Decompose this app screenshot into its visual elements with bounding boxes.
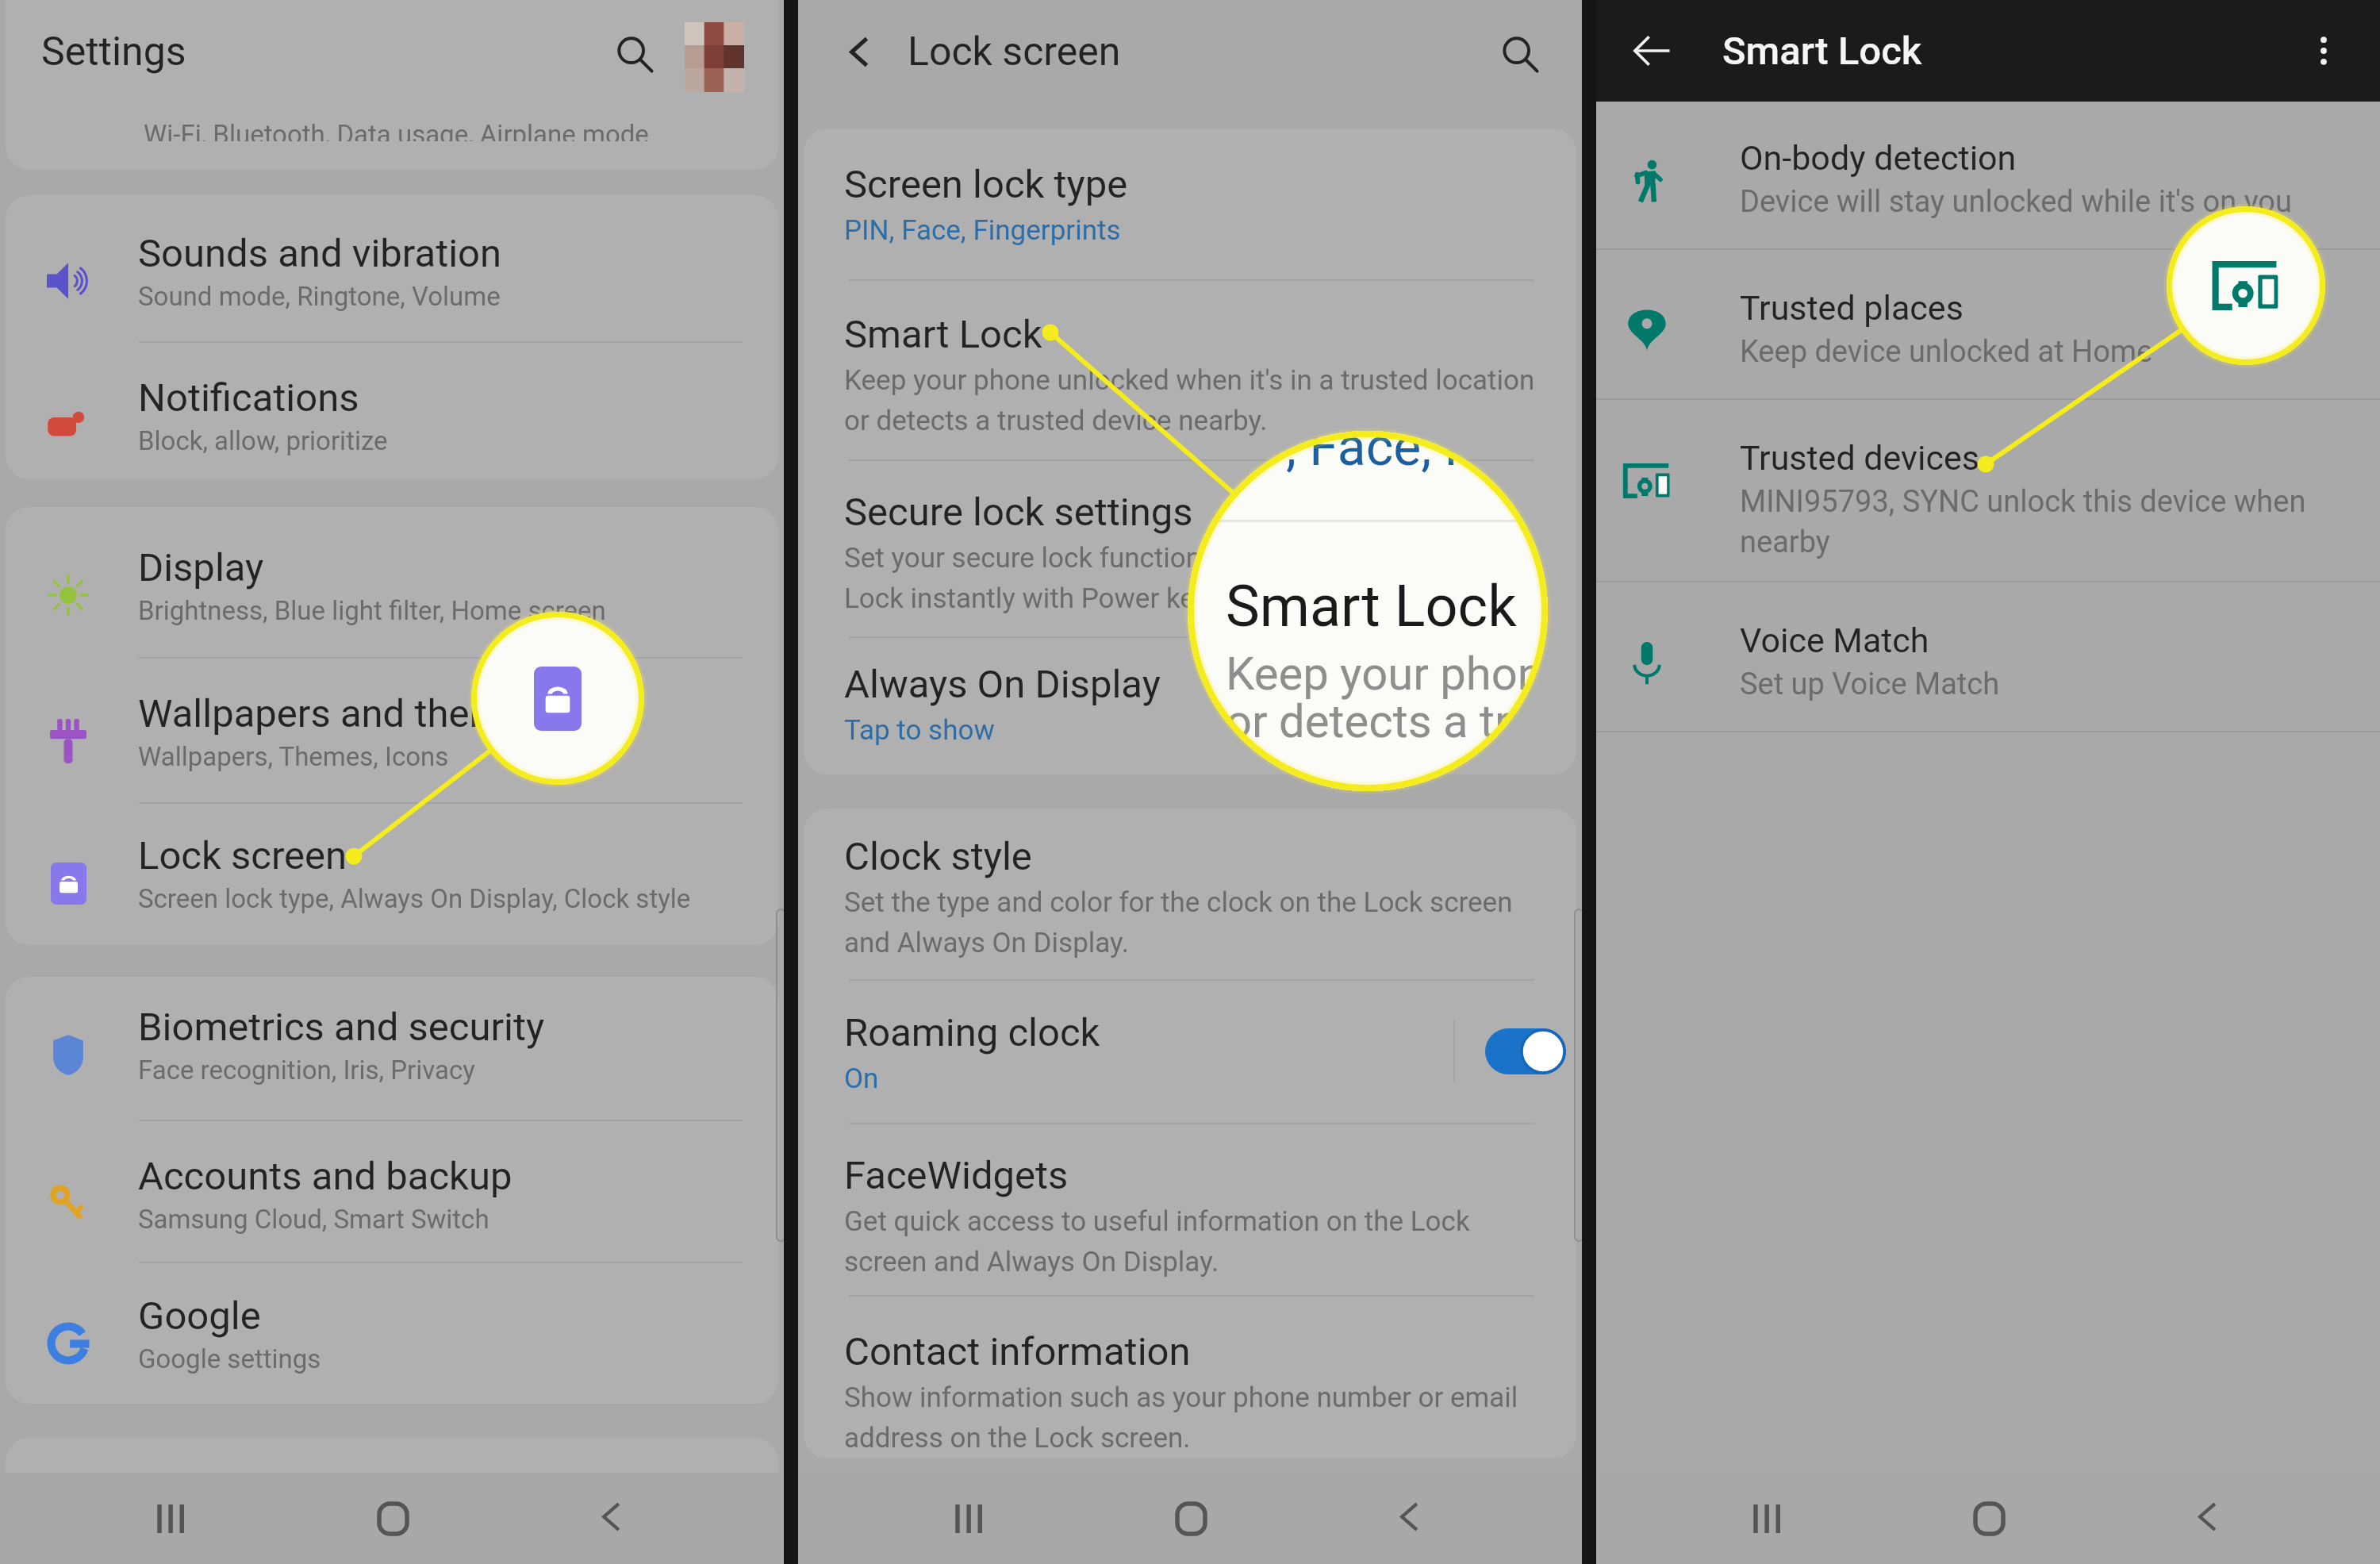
staticText: Always On Display [844,662,1161,707]
staticText: PIN, Face, Fingerprints [844,214,1121,247]
staticText: Voice Match [1740,621,1929,660]
button[interactable]: Home [357,1483,428,1554]
staticText: Google settings [138,1343,321,1374]
button[interactable]: Trusted devices [1596,400,2380,581]
button[interactable]: Contact information [804,1296,1576,1458]
button[interactable]: Always On Display [804,637,1576,774]
button[interactable]: Recent apps [935,1483,1006,1554]
staticText: Tap to show [844,714,995,747]
staticText: Google [138,1293,261,1339]
button[interactable]: Screen lock type [804,129,1576,279]
staticText: Sounds and vibration [138,231,502,276]
staticText: Trusted devices [1740,438,1979,478]
staticText: Wi-Fi, Bluetooth, Data usage, Airplane m… [144,119,649,141]
button[interactable]: Back [1620,19,1683,83]
staticText: Brightness, Blue light filter, Home scre… [138,595,606,626]
staticText: Face recognition, Iris, Privacy [138,1055,475,1086]
staticText: Biometrics and security [138,1005,545,1050]
staticText: On [844,1063,879,1095]
staticText: MINI95793, SYNC unlock this device when … [1740,484,2306,559]
button[interactable]: Back [1373,1481,1445,1552]
button[interactable]: Smart Lock [804,280,1576,459]
button[interactable]: Display [6,507,778,657]
button[interactable]: Recent apps [136,1483,208,1554]
staticText: Set your secure lock functions Lock inst… [844,542,1216,614]
staticText: Settings [41,29,186,75]
button[interactable]: Sounds and vibration [6,195,778,341]
staticText: Roaming clock [844,1010,1100,1055]
button[interactable]: Home [1155,1483,1226,1554]
button[interactable]: Google [6,1262,778,1404]
button[interactable]: On-body detection [1596,102,2380,248]
staticText: Set up Voice Match [1740,667,2000,702]
staticText: Block, allow, prioritize [138,425,388,456]
button[interactable]: Back [2171,1481,2243,1552]
staticText: Keep device unlocked at Home [1740,334,2153,370]
button[interactable]: Roaming clock toggle [1485,1028,1566,1074]
staticText: Screen lock type, Always On Display, Clo… [138,883,691,914]
staticText: Wallpapers and themes [138,691,544,736]
button[interactable]: Back [575,1481,647,1552]
staticText: Secure lock settings [844,490,1193,535]
staticText: Get quick access to useful information o… [844,1205,1470,1278]
button[interactable]: Account [685,21,743,91]
button[interactable]: Roaming clock [804,980,1576,1123]
staticText: Set the type and color for the clock on … [844,886,1513,959]
staticText: Accounts and backup [138,1154,512,1199]
staticText: Smart Lock [844,312,1042,357]
button[interactable]: Home [1953,1483,2025,1554]
staticText: Lock screen [138,833,347,878]
button[interactable]: Accounts and backup [6,1120,778,1262]
staticText: Smart Lock [1722,29,1922,74]
button[interactable]: Search [1488,22,1552,86]
staticText: , Face, Fi [1286,431,1487,478]
staticText: Device will stay unlocked while it's on … [1740,184,2292,220]
button[interactable]: Notifications [6,342,778,479]
staticText: Smart Lock [1226,573,1517,640]
button[interactable]: Biometrics and security [6,977,778,1120]
button[interactable]: Clock style [804,809,1576,979]
button[interactable]: Lock screen [6,803,778,945]
staticText: Samsung Cloud, Smart Switch [138,1204,489,1235]
staticText: or detects a trus [1226,694,1548,748]
staticText: Show information such as your phone numb… [844,1381,1518,1454]
staticText: Keep your phone [1226,647,1548,701]
button[interactable]: More options [2294,21,2353,80]
button[interactable]: Wallpapers and themes [6,658,778,802]
staticText: FaceWidgets [844,1153,1069,1198]
staticText: Sound mode, Ringtone, Volume [138,281,501,312]
staticText: Keep your phone unlocked when it's in a … [844,364,1535,436]
staticText: Trusted places [1740,288,1963,328]
button[interactable]: Voice Match [1596,582,2380,731]
button[interactable]: Trusted places [1596,250,2380,398]
button[interactable]: FaceWidgets [804,1124,1576,1295]
staticText: Wallpapers, Themes, Icons [138,741,449,772]
staticText: Notifications [138,375,359,421]
staticText: Screen lock type [844,162,1128,207]
staticText: Contact information [844,1329,1191,1374]
staticText: Clock style [844,834,1032,879]
staticText: On-body detection [1740,138,2017,178]
button[interactable]: Back [827,20,891,83]
staticText: Display [138,545,264,590]
button[interactable]: Recent apps [1733,1483,1804,1554]
button[interactable]: Search [603,22,666,86]
button[interactable]: Secure lock settings [804,460,1576,636]
staticText: Lock screen [908,29,1121,75]
